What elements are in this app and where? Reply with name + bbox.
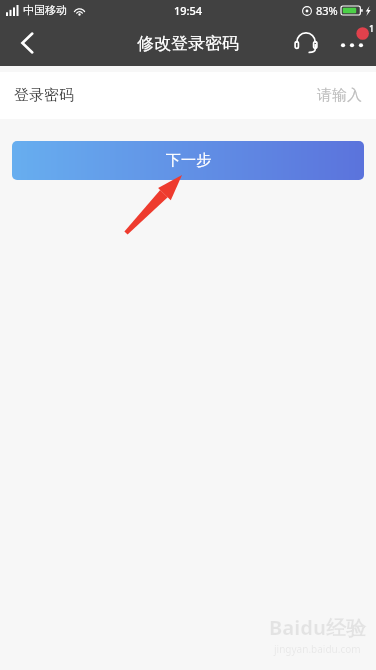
staticText: 登录密码 bbox=[14, 86, 74, 105]
staticText: 19:54 bbox=[174, 3, 203, 18]
button[interactable]: Customer service bbox=[284, 20, 328, 66]
staticText: 请输入 bbox=[317, 86, 362, 105]
staticText: Baidu经验 bbox=[269, 614, 366, 641]
staticText: 中国移动 bbox=[23, 3, 67, 17]
button[interactable]: Back bbox=[0, 20, 54, 66]
staticText: 修改登录密码 bbox=[137, 33, 239, 54]
button[interactable]: 登录密码 bbox=[0, 72, 376, 119]
staticText: 下一步 bbox=[166, 151, 211, 170]
staticText: 83% bbox=[316, 3, 338, 18]
staticText: 1 bbox=[369, 22, 375, 34]
button[interactable]: More options bbox=[328, 20, 376, 66]
staticText: jingyan.baidu.com bbox=[274, 642, 361, 656]
button[interactable]: 下一步 bbox=[12, 141, 364, 180]
